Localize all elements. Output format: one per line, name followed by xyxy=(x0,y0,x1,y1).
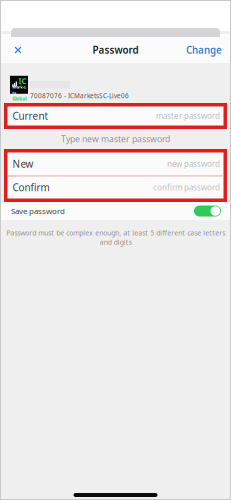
staticText: Save password xyxy=(11,206,65,216)
staticText: Markets xyxy=(12,84,26,95)
button[interactable]: Save password xyxy=(194,202,221,219)
staticText: Password must be complex enough, at leas… xyxy=(6,228,225,247)
staticText: confirm password xyxy=(153,182,220,193)
button[interactable]: Current xyxy=(7,106,223,125)
staticText: 70087076 - ICMarketsSC-Live06 xyxy=(30,91,129,100)
staticText: IC xyxy=(19,76,27,87)
staticText: Change xyxy=(186,43,222,57)
staticText: Password xyxy=(92,43,138,57)
staticText: Type new master password xyxy=(61,133,170,145)
button[interactable]: Close xyxy=(8,39,28,61)
staticText: new password xyxy=(167,159,220,169)
staticText: Current xyxy=(12,109,48,123)
staticText: Confirm xyxy=(12,181,49,194)
staticText: Global xyxy=(12,95,26,102)
button[interactable]: IC xyxy=(0,63,231,103)
button[interactable]: Confirm xyxy=(7,176,223,198)
button[interactable]: Change xyxy=(186,39,222,61)
button[interactable]: New xyxy=(7,152,223,175)
staticText: New xyxy=(12,157,33,171)
staticText: master password xyxy=(156,111,220,121)
